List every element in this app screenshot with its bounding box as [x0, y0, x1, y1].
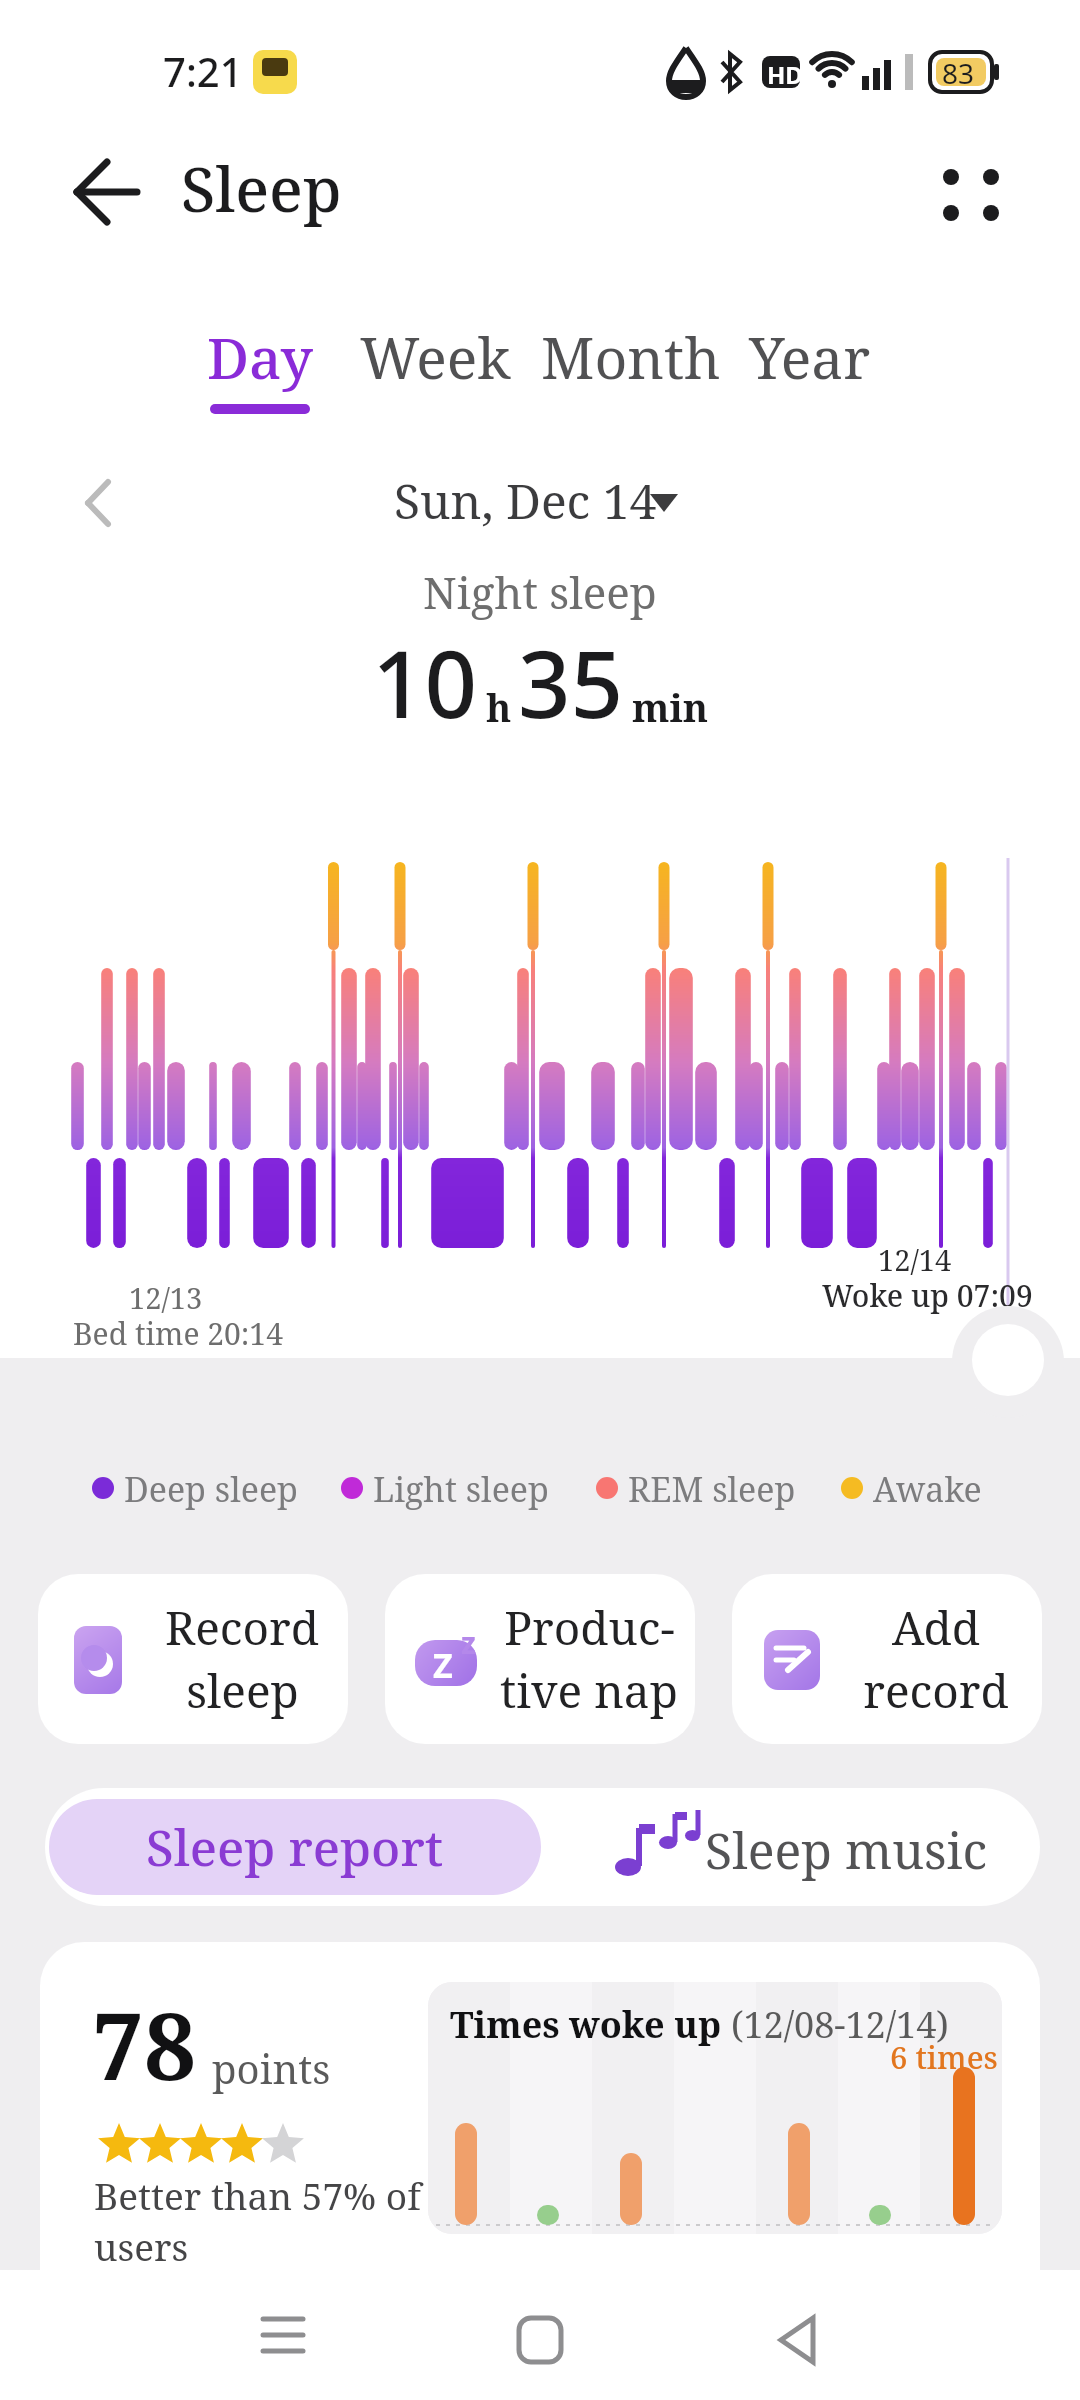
staticText: min — [632, 681, 709, 733]
staticText: Day — [207, 318, 314, 396]
staticText: Record — [165, 1596, 319, 1659]
staticText: 6 times — [890, 2036, 998, 2078]
staticText: Add — [892, 1596, 980, 1659]
staticText: 7:21 — [163, 44, 243, 98]
staticText: Deep sleep — [124, 1466, 298, 1512]
staticText: Sleep music — [705, 1816, 988, 1884]
staticText: Woke up 07:09 — [822, 1275, 1033, 1316]
button[interactable]: Z — [385, 1574, 695, 1744]
staticText: Z — [433, 1642, 453, 1688]
staticText: tive nap — [500, 1659, 678, 1722]
staticText: Bed time 20:14 — [73, 1313, 283, 1354]
staticText: (12/08-12/14) — [731, 2000, 949, 2049]
button[interactable]: Sleep report — [49, 1799, 541, 1895]
staticText: 12/14 — [878, 1240, 952, 1279]
staticText: sleep — [186, 1659, 299, 1722]
button[interactable] — [233, 2280, 333, 2390]
button[interactable] — [80, 478, 120, 528]
button[interactable]: Year — [749, 318, 871, 396]
staticText: 10 — [372, 620, 478, 745]
staticText: record — [863, 1659, 1009, 1722]
staticText: z — [461, 1622, 476, 1663]
button[interactable]: Add — [732, 1574, 1042, 1744]
staticText: Night sleep — [0, 562, 1080, 622]
staticText: Awake — [873, 1466, 982, 1512]
staticText: 78 — [92, 1982, 196, 2107]
button[interactable] — [490, 2280, 590, 2390]
button[interactable]: Week — [360, 318, 511, 396]
staticText: 12/13 — [129, 1278, 203, 1317]
button[interactable]: Day — [190, 318, 330, 428]
button[interactable]: Sleep music — [545, 1788, 1040, 1906]
staticText: REM sleep — [628, 1466, 796, 1512]
button[interactable] — [747, 2280, 847, 2390]
staticText: points — [212, 2041, 331, 2095]
button[interactable]: Sun, Dec 14 — [380, 468, 700, 532]
button[interactable] — [920, 150, 1020, 240]
button[interactable] — [55, 140, 155, 240]
staticText: Light sleep — [373, 1466, 549, 1512]
staticText: h — [486, 681, 512, 733]
staticText: Better than 57% of users — [94, 2170, 474, 2270]
staticText: Sleep — [181, 146, 342, 230]
staticText: 83 — [942, 54, 975, 92]
staticText: HD — [767, 58, 803, 91]
staticText: Sleep report — [146, 1813, 444, 1881]
staticText: Produc- — [504, 1596, 675, 1659]
staticText: Times woke up — [450, 2000, 731, 2049]
staticText: 35 — [518, 620, 624, 745]
button[interactable]: Record — [38, 1574, 348, 1744]
button[interactable]: Month — [541, 318, 721, 396]
staticText: Sun, Dec 14 — [394, 468, 657, 532]
